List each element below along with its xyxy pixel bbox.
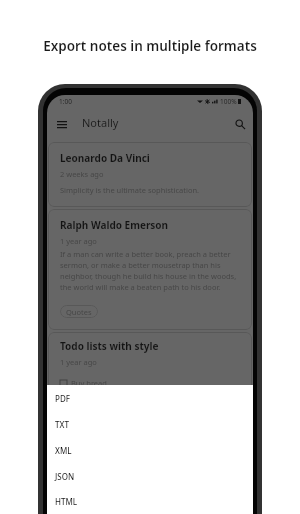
button[interactable]: Leonardo Da Vinci (48, 142, 252, 207)
button[interactable]: JSON (47, 463, 253, 489)
staticText: Simplicity is the ultimate sophisticatio… (60, 185, 200, 195)
staticText: Export notes in multiple formats (43, 37, 257, 55)
button[interactable]: Search (224, 108, 253, 137)
staticText: TXT (55, 419, 69, 430)
button[interactable]: TXT (47, 411, 253, 437)
staticText: Leonardo Da Vinci (60, 151, 150, 165)
button[interactable]: Open navigation menu (47, 108, 76, 137)
staticText: neighbor, though he build his house in t… (60, 271, 237, 281)
staticText: Ralph Waldo Emerson (60, 218, 169, 232)
button[interactable]: XML (47, 437, 253, 463)
staticText: 2 weeks ago (60, 169, 104, 179)
staticText: HTML (55, 496, 78, 507)
button[interactable]: HTML (47, 489, 253, 514)
staticText: 1:00 (59, 97, 72, 106)
staticText: Buy bread (71, 378, 107, 388)
staticText: 100% (220, 97, 237, 106)
staticText: Notally (82, 115, 119, 130)
button[interactable]: Ralph Waldo Emerson (48, 209, 252, 330)
staticText: the world will make a beaten path to his… (60, 282, 221, 292)
staticText: If a man can write a better book, preach… (60, 249, 231, 259)
staticText: XML (55, 445, 72, 456)
staticText: Todo lists with style (60, 339, 159, 353)
staticText: JSON (55, 471, 75, 482)
staticText: Quotes (66, 307, 92, 317)
staticText: sermon, or make a better mousetrap than … (60, 260, 221, 270)
staticText: 1 year ago (60, 236, 97, 246)
button[interactable]: PDF (47, 385, 253, 411)
staticText: 1 year ago (60, 357, 97, 367)
button[interactable]: Todo lists with style (48, 332, 252, 400)
staticText: PDF (55, 393, 70, 404)
button[interactable]: Quotes (60, 305, 98, 318)
